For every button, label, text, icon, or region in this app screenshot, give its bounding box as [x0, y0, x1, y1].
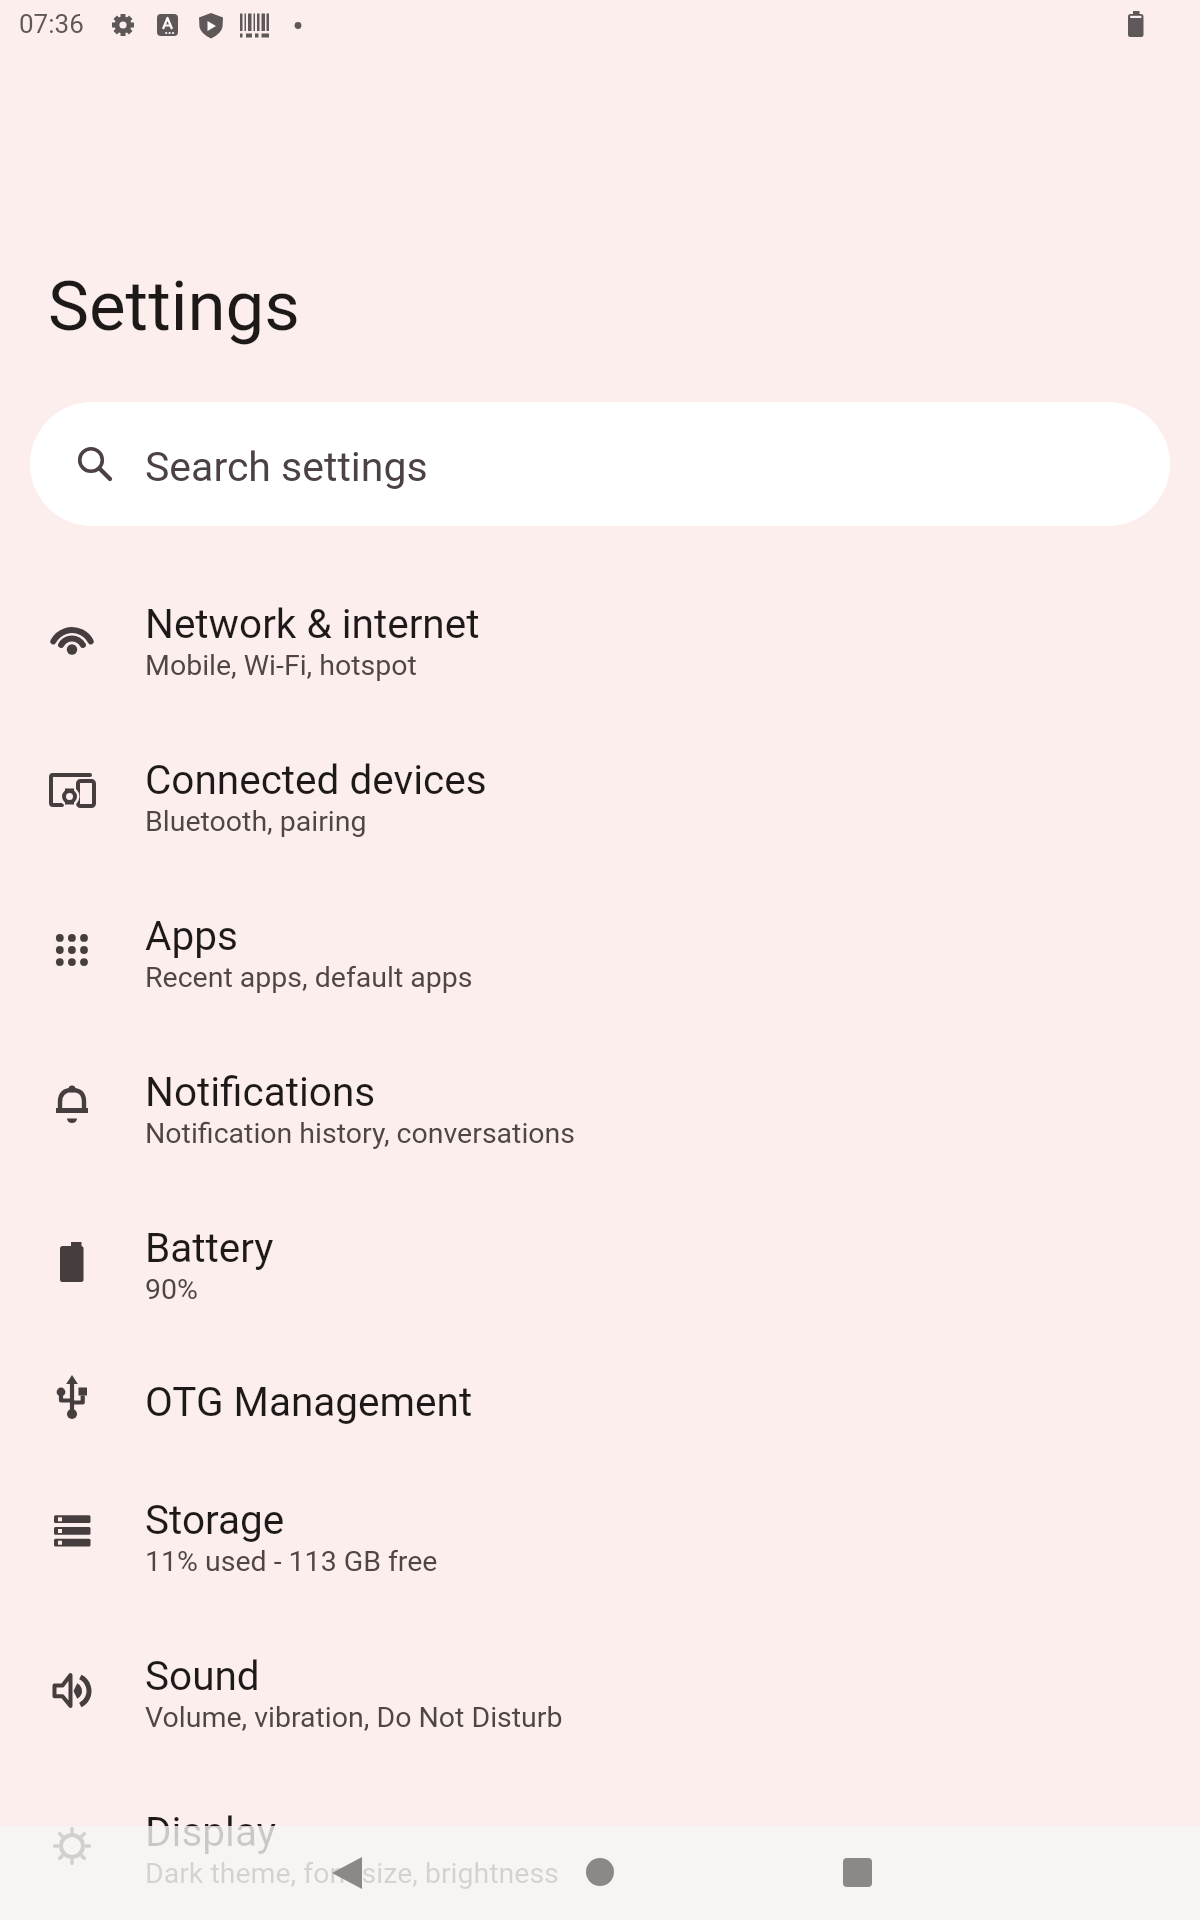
staticText: Notifications [145, 1068, 376, 1115]
staticText: Settings [48, 266, 300, 347]
button[interactable]: Storage [0, 1456, 1200, 1612]
button[interactable]: OTG Management [0, 1340, 1200, 1456]
button[interactable]: Sound [0, 1612, 1200, 1768]
button[interactable]: Notifications [0, 1028, 1200, 1184]
staticText: Battery [145, 1224, 274, 1271]
button[interactable]: Apps [0, 872, 1200, 1028]
staticText: OTG Management [145, 1378, 473, 1425]
button[interactable]: Network & internet [0, 560, 1200, 716]
staticText: Dark theme, font size, brightness [145, 1857, 559, 1890]
button[interactable]: Connected devices [0, 716, 1200, 872]
staticText: Mobile, Wi-Fi, hotspot [145, 649, 417, 682]
staticText: Network & internet [145, 600, 480, 647]
button[interactable] [322, 1847, 372, 1889]
staticText: Notification history, conversations [145, 1117, 576, 1150]
staticText: Storage [145, 1496, 285, 1543]
staticText: Bluetooth, pairing [145, 805, 367, 838]
button[interactable]: Battery [0, 1184, 1200, 1340]
staticText: Recent apps, default apps [145, 961, 473, 994]
button[interactable] [578, 1851, 622, 1895]
button[interactable] [836, 1851, 880, 1895]
staticText: 07:36 [19, 9, 84, 39]
staticText: Display [145, 1808, 276, 1855]
staticText: 11% used - 113 GB free [145, 1545, 438, 1578]
staticText: Sound [145, 1652, 260, 1699]
staticText: Apps [145, 912, 238, 959]
staticText: Search settings [145, 443, 428, 491]
staticText: 90% [145, 1273, 198, 1306]
staticText: Volume, vibration, Do Not Disturb [145, 1701, 563, 1734]
button[interactable]: Search settings [30, 402, 1170, 526]
button[interactable]: Display [0, 1768, 1200, 1920]
staticText: Connected devices [145, 756, 487, 803]
